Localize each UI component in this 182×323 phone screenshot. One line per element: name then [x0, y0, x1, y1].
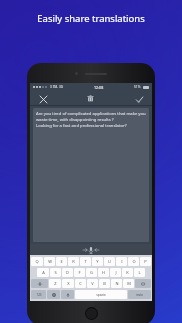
staticText: F: [78, 270, 81, 275]
button[interactable]: L: [134, 268, 145, 277]
button[interactable]: Y: [92, 257, 103, 266]
button[interactable]: A: [37, 268, 49, 277]
staticText: 123: [36, 293, 42, 297]
button[interactable]: S: [50, 268, 61, 277]
staticText: O: [132, 259, 136, 264]
staticText: N: [115, 281, 119, 286]
button[interactable]: Voice input: [80, 244, 102, 255]
button[interactable]: Language: [47, 290, 60, 299]
staticText: Y: [96, 259, 99, 264]
staticText: invio: [136, 293, 143, 297]
staticText: Easily share translations: [37, 12, 145, 25]
button[interactable]: Are you tired of complicated application…: [33, 108, 149, 242]
staticText: 12:08: [94, 85, 104, 90]
button[interactable]: F: [74, 268, 85, 277]
button[interactable]: Shift: [31, 279, 48, 288]
staticText: I: [121, 259, 123, 264]
staticText: P: [144, 259, 147, 264]
button[interactable]: Delete: [84, 92, 97, 105]
staticText: L: [138, 270, 141, 275]
button[interactable]: I: [116, 257, 127, 266]
button[interactable]: Z: [49, 279, 61, 288]
button[interactable]: T: [80, 257, 91, 266]
button[interactable]: V: [87, 279, 98, 288]
staticText: R: [72, 259, 75, 264]
staticText: U: [108, 259, 111, 264]
button[interactable]: E: [56, 257, 67, 266]
staticText: B: [103, 281, 106, 286]
button[interactable]: D: [62, 268, 73, 277]
staticText: E: [60, 259, 63, 264]
button[interactable]: X: [62, 279, 74, 288]
staticText: Are you tired of complicated application…: [36, 111, 146, 129]
button[interactable]: invio: [128, 290, 151, 299]
staticText: 51%: [134, 85, 141, 89]
staticText: Z: [54, 281, 57, 286]
button[interactable]: spazio: [75, 290, 127, 299]
button[interactable]: C: [75, 279, 86, 288]
button[interactable]: M: [123, 279, 134, 288]
staticText: C: [79, 281, 82, 286]
staticText: S: [54, 270, 57, 275]
staticText: M: [127, 281, 131, 286]
button[interactable]: P: [140, 257, 151, 266]
staticText: T: [84, 259, 87, 264]
button[interactable]: Confirm: [133, 93, 145, 105]
staticText: V: [91, 281, 94, 286]
staticText: 3 ITA 3G: [50, 85, 64, 89]
button[interactable]: G: [86, 268, 97, 277]
staticText: X: [67, 281, 70, 286]
staticText: J: [115, 270, 117, 275]
button[interactable]: B: [99, 279, 110, 288]
button[interactable]: O: [128, 257, 139, 266]
button[interactable]: Dictation: [61, 290, 74, 299]
staticText: Q: [35, 259, 39, 264]
button[interactable]: U: [104, 257, 115, 266]
staticText: K: [126, 270, 129, 275]
staticText: H: [102, 270, 105, 275]
button[interactable]: H: [98, 268, 109, 277]
button[interactable]: R: [68, 257, 79, 266]
button[interactable]: K: [122, 268, 133, 277]
staticText: A: [42, 270, 45, 275]
button[interactable]: Close: [37, 93, 49, 105]
staticText: G: [90, 270, 93, 275]
staticText: W: [48, 259, 52, 264]
staticText: D: [66, 270, 69, 275]
button[interactable]: 123: [31, 290, 46, 299]
button[interactable]: J: [110, 268, 121, 277]
staticText: spazio: [96, 293, 106, 297]
button[interactable]: Backspace: [135, 279, 151, 288]
button[interactable]: Q: [31, 257, 43, 266]
button[interactable]: N: [111, 279, 122, 288]
button[interactable]: W: [44, 257, 55, 266]
